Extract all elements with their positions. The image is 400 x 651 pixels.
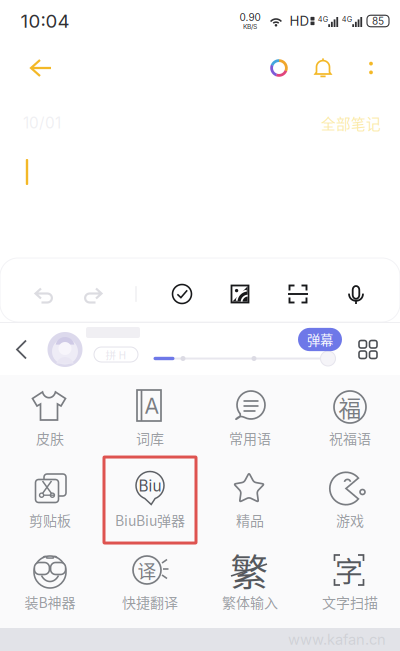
button[interactable]: 字 [300,539,400,621]
button[interactable]: Keyboard panel [350,333,386,365]
staticText: HD [289,13,309,29]
staticText: 快捷翻译 [122,592,178,612]
staticText: 4G [318,15,328,24]
button[interactable]: Theme [258,46,300,90]
button[interactable]: Back [14,46,62,90]
button[interactable]: Back [8,333,36,365]
staticText: 游戏 [336,510,364,530]
button[interactable]: 游戏 [300,457,400,539]
staticText: 译 [137,556,156,583]
button[interactable]: 皮肤 [0,375,100,457]
button[interactable]: Scan document [276,272,320,316]
button[interactable]: 剪贴板 [0,457,100,539]
staticText: 全部笔记 [321,112,381,134]
staticText: 精品 [236,510,264,530]
staticText: www.kafan.cn [288,631,386,648]
button[interactable]: Insert image [218,272,262,316]
staticText: A [144,393,159,419]
button[interactable]: A [100,375,200,457]
staticText: 剪贴板 [29,510,71,530]
staticText: 繁体输入 [222,592,278,612]
button[interactable]: 精品 [200,457,300,539]
staticText: KB/S [243,22,257,31]
staticText: 4G [342,15,352,24]
staticText: 10:04 [20,10,69,32]
staticText: Biu [138,477,161,495]
button[interactable]: Undo [22,272,68,316]
button[interactable]: Reminders [302,46,344,90]
button[interactable]: 译 [100,539,200,621]
button[interactable]: More options [354,46,388,90]
button[interactable]: 福 [300,375,400,457]
staticText: BiuBiu弹器 [115,510,185,530]
staticText: 85 [372,15,384,27]
staticText: 0.90 [239,11,260,23]
staticText: 字 [335,550,363,590]
staticText: 文字扫描 [322,592,378,612]
button[interactable]: Biu [100,457,200,539]
staticText: 皮肤 [36,428,64,448]
staticText: 福 [338,391,361,423]
staticText: 弹幕 [307,330,333,349]
staticText: 装B神器 [24,592,75,612]
button[interactable]: Voice input [334,272,378,316]
staticText: 词库 [136,428,164,448]
button[interactable]: 装B神器 [0,539,100,621]
staticText: 常用语 [229,428,271,448]
button[interactable]: 繁 [200,539,300,621]
staticText: 祝福语 [329,428,371,448]
button[interactable]: 全部笔记 [317,109,385,137]
staticText: 繁 [230,543,267,597]
button[interactable]: Redo [69,272,115,316]
button[interactable]: Checklist [160,272,204,316]
staticText: 拼 H [105,347,126,362]
staticText: 10/01 [23,114,61,132]
button[interactable]: 常用语 [200,375,300,457]
